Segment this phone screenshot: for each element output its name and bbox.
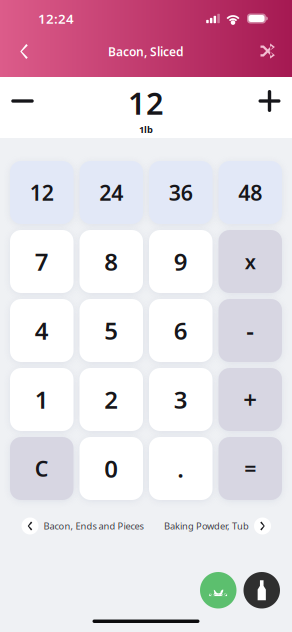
button[interactable]: Baking Powder, Tub	[164, 517, 271, 534]
staticText: 12	[30, 178, 54, 207]
button[interactable]: Back	[6, 32, 42, 70]
button[interactable]: 4	[10, 299, 73, 362]
button[interactable]: 36	[149, 161, 212, 224]
button[interactable]: 6	[149, 299, 212, 362]
staticText: 48	[238, 178, 262, 207]
staticText: 24	[99, 178, 123, 207]
staticText: 9	[174, 246, 188, 277]
button[interactable]: 2	[79, 368, 143, 431]
button[interactable]: 8	[79, 230, 143, 293]
button[interactable]: Sync to cloud	[200, 572, 236, 608]
button[interactable]: 24	[79, 161, 143, 224]
button[interactable]: Shuffle	[250, 32, 286, 70]
staticText: Baking Powder, Tub	[164, 520, 249, 532]
staticText: 7	[35, 246, 49, 277]
button[interactable]: C	[10, 437, 73, 500]
staticText: 0	[104, 453, 118, 484]
button[interactable]: 1	[10, 368, 73, 431]
staticText: -	[246, 315, 254, 346]
staticText: 3	[174, 384, 188, 415]
button[interactable]: x	[218, 230, 282, 293]
staticText: +	[243, 384, 257, 415]
button[interactable]: Decrease quantity	[0, 77, 45, 125]
button[interactable]: 3	[149, 368, 212, 431]
staticText: 1lb	[139, 123, 153, 136]
staticText: 4	[35, 315, 49, 346]
button[interactable]: Add bottle	[243, 572, 280, 608]
staticText: .	[177, 453, 184, 484]
staticText: 12	[128, 82, 164, 123]
button[interactable]: +	[218, 368, 282, 431]
staticText: 5	[104, 315, 118, 346]
button[interactable]: 48	[218, 161, 282, 224]
button[interactable]: 9	[149, 230, 212, 293]
button[interactable]: 7	[10, 230, 73, 293]
staticText: 2	[104, 384, 118, 415]
staticText: Bacon, Ends and Pieces	[43, 520, 143, 532]
staticText: =	[244, 454, 256, 483]
staticText: 36	[169, 178, 193, 207]
button[interactable]: Bacon, Ends and Pieces	[21, 517, 143, 534]
button[interactable]: 0	[79, 437, 143, 500]
staticText: 8	[104, 246, 118, 277]
button[interactable]: Increase quantity	[247, 77, 292, 125]
button[interactable]: 12	[10, 161, 73, 224]
staticText: Bacon, Sliced	[108, 43, 184, 59]
staticText: 1	[35, 384, 49, 415]
staticText: 6	[174, 315, 188, 346]
staticText: 12:24	[38, 10, 74, 27]
button[interactable]: 5	[79, 299, 143, 362]
button[interactable]: .	[149, 437, 212, 500]
button[interactable]: =	[218, 437, 282, 500]
staticText: x	[245, 248, 256, 275]
staticText: C	[35, 454, 49, 483]
button[interactable]: -	[218, 299, 282, 362]
